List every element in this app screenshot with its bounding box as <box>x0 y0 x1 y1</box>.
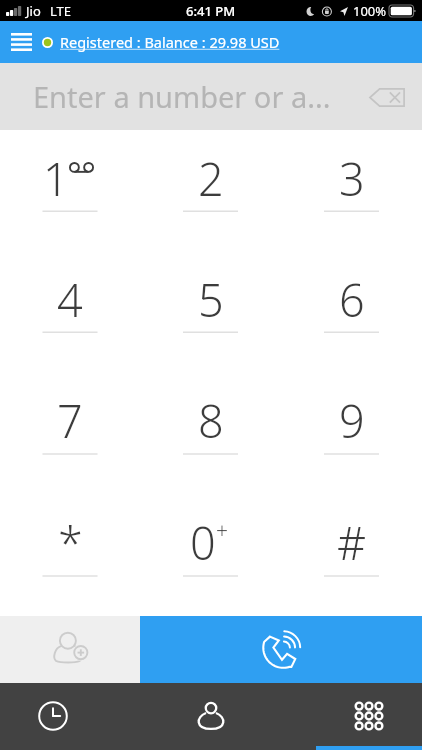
button[interactable]: 1 <box>0 130 140 251</box>
button[interactable]: 9 <box>281 372 422 494</box>
staticText: 8 <box>198 390 224 451</box>
staticText: 7 <box>57 390 83 451</box>
button[interactable]: Registered : Balance : 29.98 USD <box>42 32 280 52</box>
staticText: + <box>216 517 228 546</box>
button[interactable]: Contacts <box>158 683 264 750</box>
staticText: 4 <box>57 269 83 330</box>
button[interactable]: 3 <box>281 130 422 251</box>
staticText: 6 <box>339 269 365 330</box>
staticText: 1 <box>43 148 69 209</box>
button[interactable]: 4 <box>0 251 140 372</box>
staticText: 5 <box>198 269 224 330</box>
button[interactable]: 0 <box>140 494 281 616</box>
button[interactable]: Add contact <box>0 616 140 683</box>
button[interactable]: 6 <box>281 251 422 372</box>
button[interactable]: Recents <box>0 683 106 750</box>
button[interactable]: Call <box>140 616 422 683</box>
staticText: 0 <box>190 512 216 573</box>
button[interactable]: * <box>0 494 140 616</box>
staticText: 100% <box>353 2 387 20</box>
button[interactable]: Menu <box>0 21 42 63</box>
staticText: * <box>58 512 83 573</box>
button[interactable]: 8 <box>140 372 281 494</box>
staticText: 2 <box>198 148 224 209</box>
staticText: LTE <box>50 2 72 20</box>
staticText: Enter a number or a... <box>33 77 331 116</box>
staticText: 6:41 PM <box>186 2 236 20</box>
button[interactable]: 5 <box>140 251 281 372</box>
staticText: Registered : Balance : 29.98 USD <box>60 32 280 52</box>
button[interactable]: 2 <box>140 130 281 251</box>
staticText: Jio <box>26 2 41 20</box>
button[interactable]: Keypad <box>316 683 422 750</box>
button[interactable]: Backspace <box>365 75 409 119</box>
staticText: 9 <box>339 390 365 451</box>
button[interactable]: 7 <box>0 372 140 494</box>
staticText: # <box>337 512 367 573</box>
button[interactable]: # <box>281 494 422 616</box>
staticText: 3 <box>339 148 365 209</box>
